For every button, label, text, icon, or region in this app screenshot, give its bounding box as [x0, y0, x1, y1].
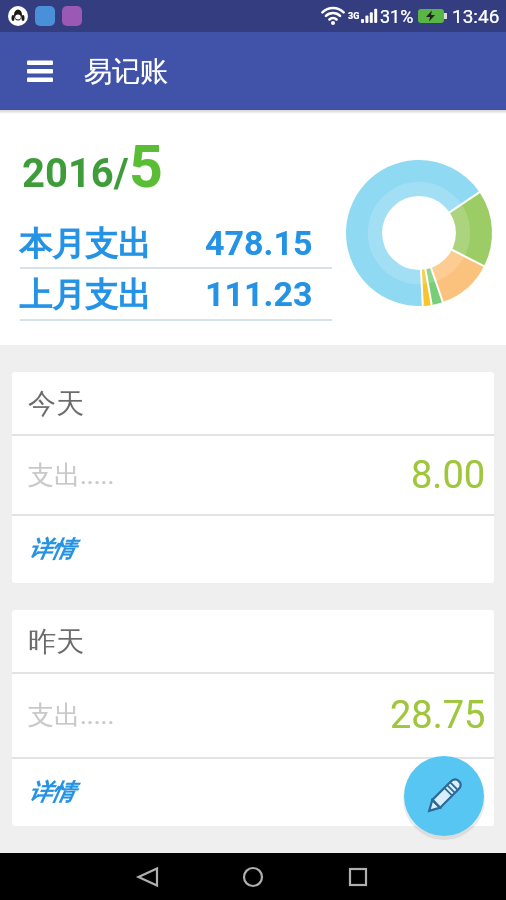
staticText: 易记账: [84, 54, 168, 89]
staticText: 支出.....: [28, 699, 115, 732]
staticText: 478.15: [205, 223, 313, 263]
staticText: 本月支出: [19, 223, 151, 265]
staticText: 3G: [348, 11, 360, 22]
staticText: 支出.....: [28, 459, 115, 492]
staticText: 28.75: [390, 693, 486, 738]
staticText: 详情: [28, 535, 74, 564]
staticText: 5: [129, 132, 163, 201]
staticText: 111.23: [205, 274, 313, 314]
staticText: 详情: [28, 778, 74, 807]
staticText: 8.00: [411, 453, 486, 498]
staticText: 今天: [28, 386, 84, 421]
staticText: 13:46: [452, 5, 500, 27]
staticText: 上月支出: [19, 274, 151, 316]
staticText: 2016/: [22, 150, 129, 197]
staticText: 31%: [380, 6, 414, 27]
staticText: 昨天: [28, 624, 84, 659]
